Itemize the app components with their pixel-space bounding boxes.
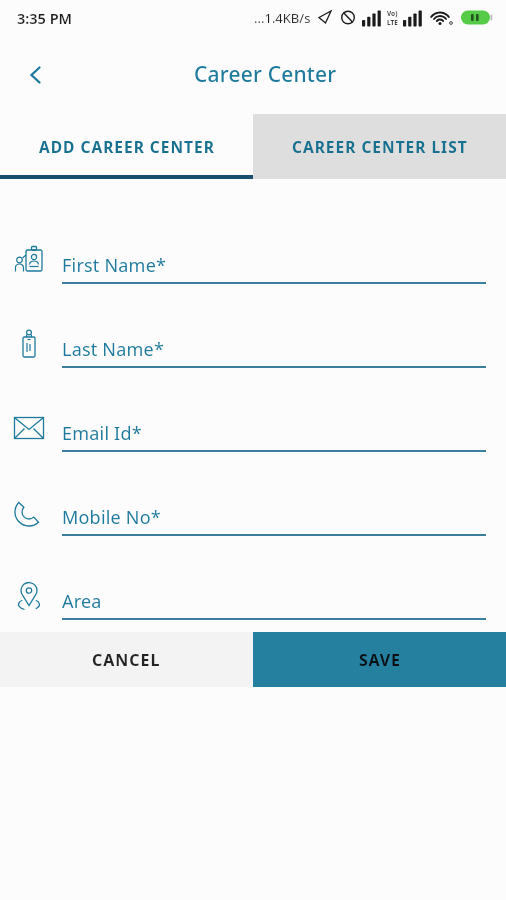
button[interactable]: Area [0, 536, 506, 620]
staticText: First Name* [62, 253, 167, 278]
staticText: Career Center [194, 60, 337, 89]
button[interactable]: ADD CAREER CENTER [0, 114, 253, 179]
staticText: 3:35 PM [17, 8, 73, 28]
button[interactable]: SAVE [253, 632, 506, 687]
staticText: Vo) [387, 9, 398, 18]
staticText: LTE [387, 18, 398, 27]
button[interactable]: Last Name* [0, 284, 506, 368]
staticText: CANCEL [92, 649, 161, 671]
staticText: Last Name* [62, 337, 165, 362]
staticText: Mobile No* [62, 505, 161, 530]
staticText: Area [62, 589, 102, 614]
staticText: ...1.4KB/s [254, 9, 311, 27]
staticText: CAREER CENTER LIST [292, 136, 468, 157]
button[interactable] [16, 55, 56, 95]
button[interactable]: CANCEL [0, 632, 253, 687]
staticText: ADD CAREER CENTER [39, 136, 215, 157]
button[interactable]: CAREER CENTER LIST [253, 114, 506, 179]
button[interactable]: Mobile No* [0, 452, 506, 536]
staticText: SAVE [359, 649, 401, 671]
button[interactable]: Email Id* [0, 368, 506, 452]
staticText: Email Id* [62, 421, 142, 446]
button[interactable]: First Name* [0, 200, 506, 284]
